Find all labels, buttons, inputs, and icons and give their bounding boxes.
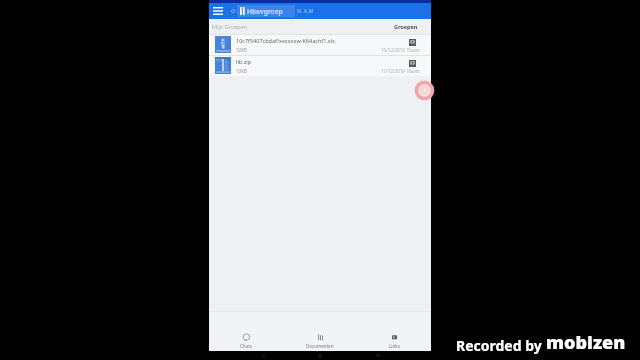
staticText: Links (389, 343, 400, 349)
button[interactable]: lib.zip (209, 55, 431, 76)
button[interactable]: Recording (414, 80, 435, 101)
staticText: Recorded by (456, 336, 546, 355)
staticText: N. A.M (297, 8, 314, 15)
button[interactable]: Menu (212, 4, 224, 18)
staticText: lib.zip (236, 58, 252, 65)
button[interactable]: Save (407, 58, 417, 68)
button[interactable]: Documenten (283, 312, 357, 351)
staticText: Hbovgroep (247, 7, 283, 16)
button[interactable]: Save (407, 37, 417, 47)
staticText: 10c7f5407cbdaf/xxxxxxw-K64achf1.xls (236, 37, 335, 44)
button[interactable]: Back (259, 353, 267, 358)
button[interactable]: Recents (374, 353, 382, 358)
staticText: 12KB (236, 47, 247, 53)
staticText: 10/12/2019 Naam (381, 47, 420, 53)
button[interactable]: Home (316, 353, 324, 358)
button[interactable]: Links (357, 312, 431, 351)
staticText: mobizen (546, 330, 626, 355)
staticText: 11/12/2019 Naam (381, 68, 420, 74)
staticText: Chats (240, 343, 252, 349)
button[interactable]: Groepen (392, 22, 420, 31)
staticText: Groepen (394, 23, 418, 30)
staticText: Documenten (306, 343, 334, 349)
staticText: Mijn Groepen (212, 23, 248, 30)
button[interactable]: 10c7f5407cbdaf/xxxxxxw-K64achf1.xls (209, 34, 431, 55)
staticText: 13KB (236, 68, 247, 74)
button[interactable]: Chats (209, 312, 283, 351)
